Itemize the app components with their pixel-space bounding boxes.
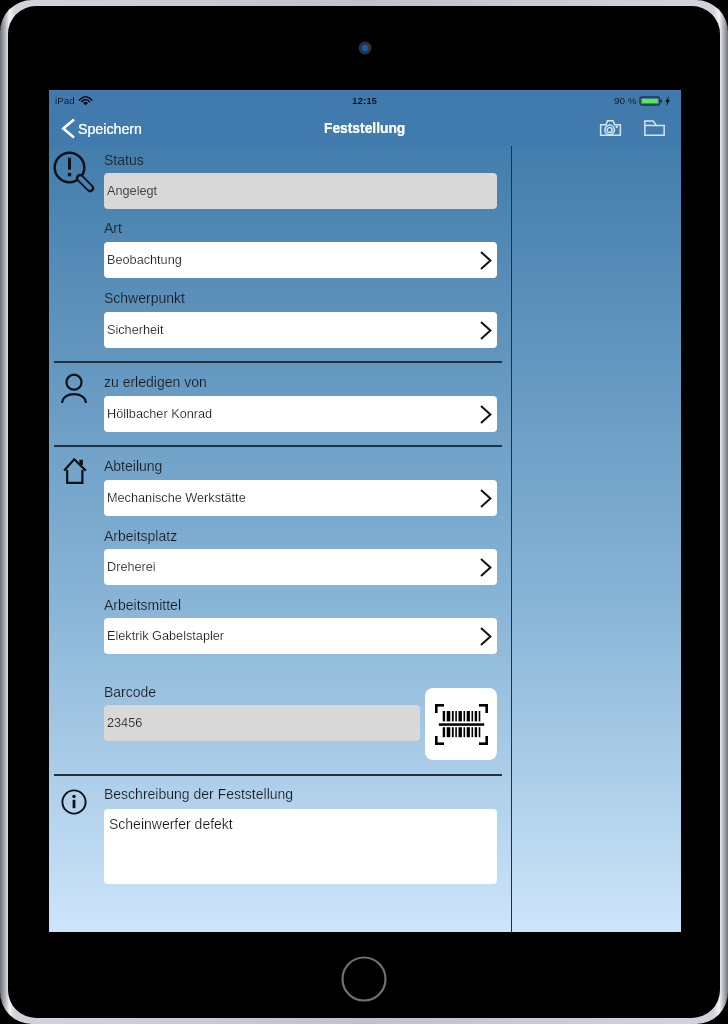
button[interactable]: Sicherheit [104, 312, 497, 348]
staticText: Höllbacher Konrad [107, 407, 213, 421]
staticText: 23456 [107, 716, 143, 730]
button[interactable]: Höllbacher Konrad [104, 396, 497, 432]
button[interactable]: Scheinwerfer defekt [104, 809, 497, 884]
button[interactable]: Angelegt [104, 173, 497, 209]
staticText: Schwerpunkt [104, 290, 185, 306]
button[interactable]: Camera [593, 111, 627, 145]
staticText: Sicherheit [107, 323, 164, 337]
staticText: Art [104, 220, 122, 236]
staticText: Arbeitsmittel [104, 597, 182, 613]
staticText: Arbeitsplatz [104, 528, 178, 544]
staticText: Beschreibung der Feststellung [104, 786, 294, 802]
staticText: Angelegt [107, 184, 158, 198]
button[interactable]: 23456 [104, 705, 420, 741]
button[interactable]: Speichern [49, 114, 152, 143]
staticText: 90 % [614, 95, 637, 106]
staticText: 12:15 [352, 95, 378, 106]
button[interactable]: Mechanische Werkstätte [104, 480, 497, 516]
staticText: zu erledigen von [104, 374, 207, 390]
staticText: Beobachtung [107, 253, 182, 267]
staticText: Feststellung [324, 121, 406, 136]
staticText: Barcode [104, 684, 157, 700]
button[interactable]: Beobachtung [104, 242, 497, 278]
staticText: Elektrik Gabelstapler [107, 629, 225, 643]
button[interactable]: Folder [637, 111, 671, 145]
staticText: Scheinwerfer defekt [109, 816, 233, 832]
staticText: Status [104, 152, 144, 168]
button[interactable]: Elektrik Gabelstapler [104, 618, 497, 654]
staticText: Abteilung [104, 458, 163, 474]
staticText: Mechanische Werkstätte [107, 491, 246, 505]
staticText: Speichern [78, 121, 142, 137]
button[interactable]: Scan barcode [425, 688, 497, 760]
staticText: iPad [55, 95, 75, 106]
button[interactable]: Dreherei [104, 549, 497, 585]
staticText: Dreherei [107, 560, 156, 574]
